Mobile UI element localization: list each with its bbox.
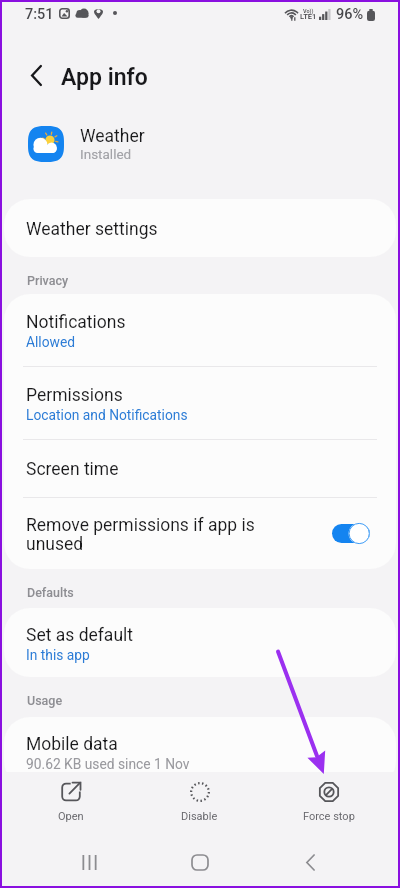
button[interactable]: Weather (0, 110, 400, 182)
staticText: Installed (80, 146, 132, 162)
staticText: Disable (181, 810, 218, 823)
staticText: Force stop (303, 810, 355, 823)
button[interactable]: Screen time (4, 440, 396, 497)
staticText: Remove permissions if app is unused (26, 515, 255, 555)
staticText: Privacy (27, 273, 69, 288)
staticText: Mobile data (26, 734, 118, 755)
button[interactable]: Back (255, 836, 366, 888)
staticText: Open (58, 810, 84, 823)
button[interactable]: Navigate up (16, 55, 56, 95)
staticText: Allowed (26, 334, 76, 350)
button[interactable]: Open (7, 772, 135, 836)
staticText: Vo)) (303, 8, 314, 14)
button[interactable]: Disable (135, 772, 264, 836)
button[interactable]: Force stop (264, 772, 393, 836)
button[interactable]: Mobile data (4, 717, 396, 787)
staticText: LTE1 (300, 12, 317, 21)
button[interactable]: Notifications (4, 294, 396, 366)
staticText: App info (61, 64, 148, 91)
staticText: 7:51 (25, 6, 54, 23)
staticText: Set as default (26, 625, 134, 646)
button[interactable]: Permissions (4, 367, 396, 439)
staticText: 90.62 KB used since 1 Nov (26, 756, 190, 772)
staticText: Usage (27, 693, 63, 708)
staticText: Location and Notifications (26, 407, 188, 423)
staticText: 96% (336, 6, 364, 23)
button[interactable]: Recents (34, 836, 144, 888)
staticText: In this app (26, 647, 90, 663)
button[interactable]: Set as default (4, 608, 396, 677)
staticText: Screen time (26, 459, 119, 480)
staticText: Defaults (27, 585, 74, 600)
staticText: Permissions (26, 385, 123, 406)
staticText: Notifications (26, 312, 126, 333)
staticText: Weather (80, 126, 145, 147)
staticText: Weather settings (26, 219, 158, 240)
button[interactable]: Remove permissions if app is unused (4, 498, 396, 569)
button[interactable]: Weather settings (4, 199, 396, 257)
button[interactable]: Home (144, 836, 255, 888)
